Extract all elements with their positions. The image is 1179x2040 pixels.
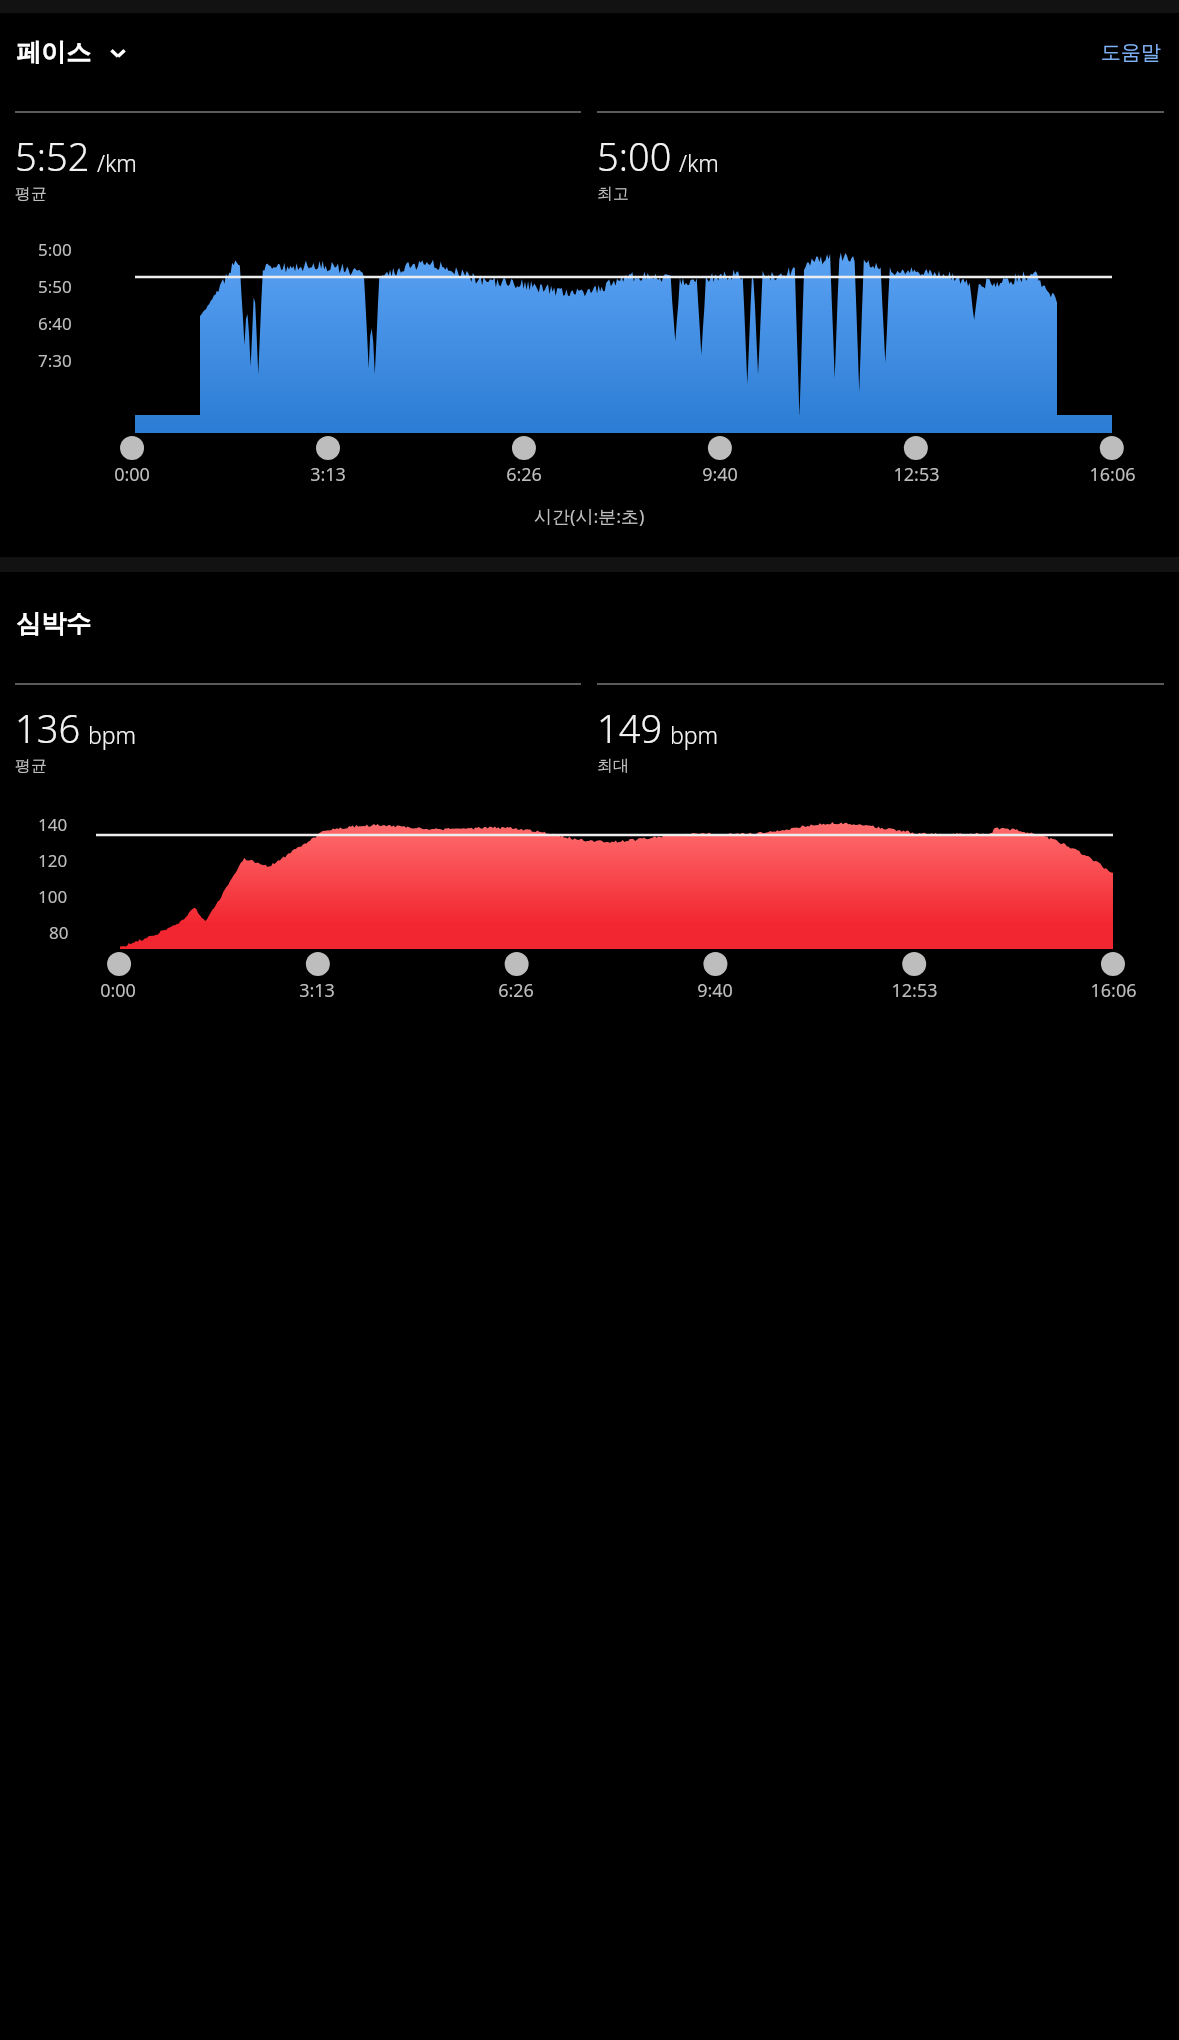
staticText: 평균 [15, 184, 47, 204]
staticText: 80 [49, 921, 69, 944]
staticText: 140 [38, 813, 68, 836]
other: Change metric [107, 42, 129, 64]
staticText: 5:52 [15, 130, 90, 182]
staticText: 최고 [597, 184, 629, 204]
staticText: bpm [88, 719, 137, 750]
staticText: 5:00 [597, 130, 672, 182]
staticText: 3:13 [299, 978, 335, 1003]
staticText: 6:26 [498, 978, 534, 1003]
staticText: bpm [670, 719, 719, 750]
staticText: 최대 [597, 756, 629, 776]
staticText: 100 [38, 885, 68, 908]
staticText: 16:06 [1090, 978, 1137, 1003]
staticText: 심박수 [16, 608, 91, 639]
staticText: 6:40 [38, 312, 72, 335]
staticText: 136 [15, 702, 81, 754]
staticText: 페이스 [16, 37, 91, 68]
staticText: 12:53 [891, 978, 938, 1003]
staticText: 도움말 [1101, 40, 1161, 65]
staticText: 6:26 [506, 462, 542, 487]
staticText: /km [679, 147, 719, 178]
staticText: 149 [597, 702, 663, 754]
staticText: 3:13 [310, 462, 346, 487]
button[interactable]: 도움말 [1095, 32, 1167, 73]
staticText: 9:40 [702, 462, 738, 487]
staticText: /km [97, 147, 137, 178]
staticText: 평균 [15, 756, 47, 776]
button[interactable]: 페이스 [12, 31, 133, 74]
staticText: 5:50 [38, 275, 72, 298]
staticText: 0:00 [114, 462, 150, 487]
staticText: 5:00 [38, 238, 72, 261]
staticText: 120 [38, 849, 68, 872]
staticText: 9:40 [697, 978, 733, 1003]
staticText: 16:06 [1089, 462, 1136, 487]
staticText: 시간(시:분:초) [534, 504, 645, 529]
staticText: 7:30 [38, 349, 72, 372]
staticText: 12:53 [893, 462, 940, 487]
staticText: 0:00 [100, 978, 136, 1003]
